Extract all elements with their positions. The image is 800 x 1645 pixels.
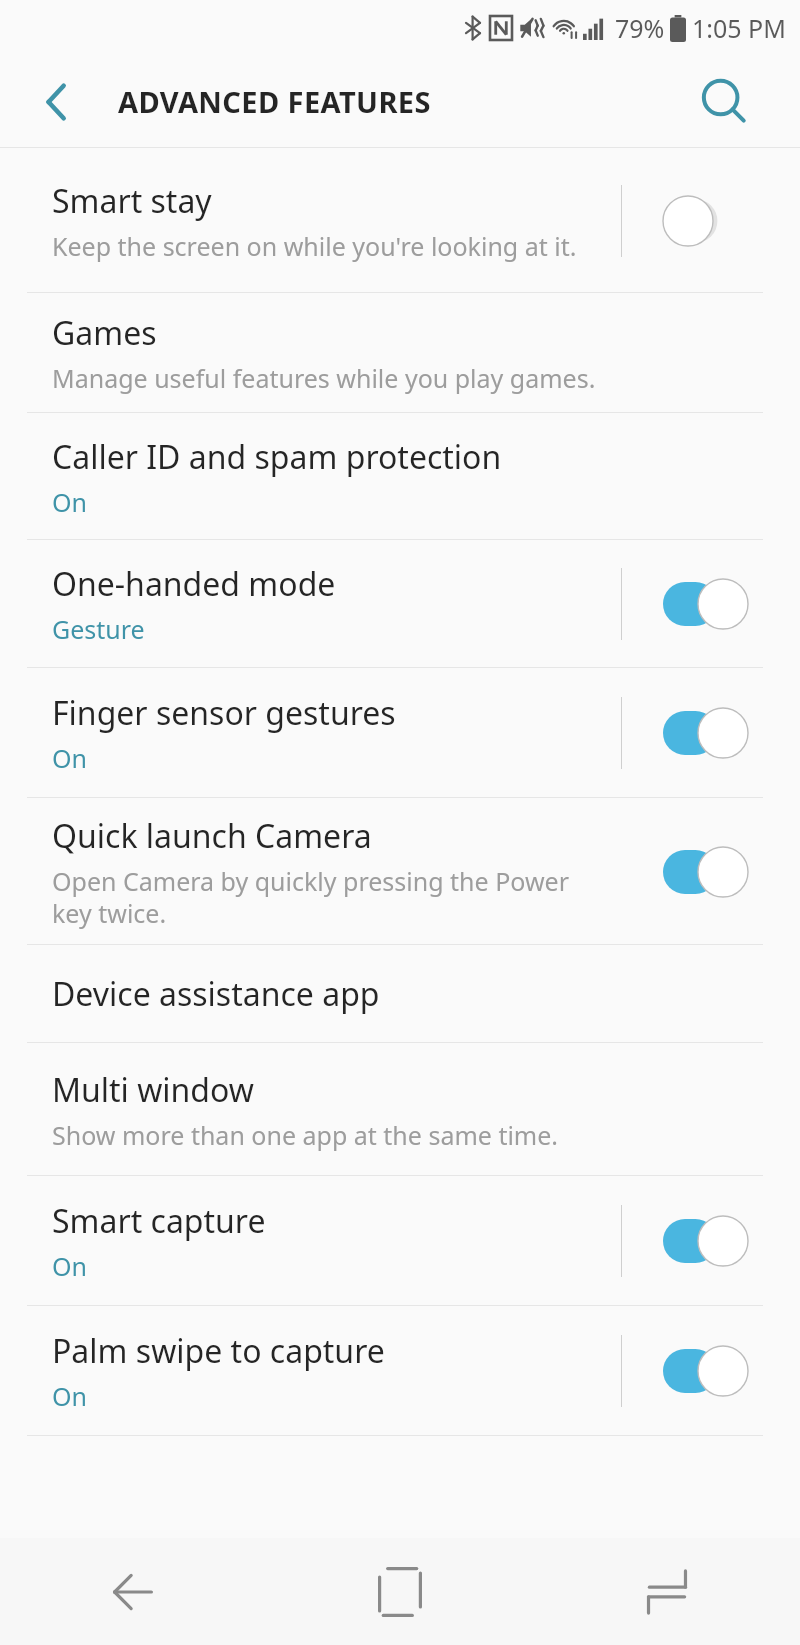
staticText: Show more than one app at the same time. [52,1118,559,1152]
button[interactable]: Finger sensor gestures toggle [605,668,800,798]
staticText: On [52,1379,87,1413]
button[interactable]: Smart capture [0,1176,800,1306]
staticText: Keep the screen on while you're looking … [52,229,577,263]
staticText: Games [52,311,157,355]
button[interactable]: Back [0,1538,266,1645]
staticText: On [52,485,87,519]
staticText: Manage useful features while you play ga… [52,361,596,395]
staticText: Open Camera by quickly pressing the Powe… [52,864,597,930]
button[interactable]: Games [0,293,800,413]
button[interactable]: Caller ID and spam protection [0,413,800,540]
staticText: On [52,741,87,775]
button[interactable]: Multi window [0,1043,800,1176]
button[interactable]: Palm swipe to capture toggle [605,1306,800,1436]
staticText: ADVANCED FEATURES [118,82,431,121]
button[interactable]: Recent apps [533,1538,800,1645]
staticText: Finger sensor gestures [52,691,396,735]
staticText: Device assistance app [52,972,380,1016]
button[interactable]: Back [30,73,88,131]
staticText: Smart capture [52,1199,266,1243]
button[interactable]: Palm swipe to capture [0,1306,800,1436]
staticText: Multi window [52,1068,254,1112]
button[interactable]: Search [696,74,752,130]
button[interactable]: Quick launch Camera toggle [605,798,800,945]
staticText: On [52,1249,87,1283]
button[interactable]: One-handed mode [0,540,800,668]
button[interactable]: Smart stay [0,148,800,293]
staticText: One-handed mode [52,562,336,606]
staticText: 79% [615,11,665,45]
button[interactable]: Home [266,1538,533,1645]
staticText: Gesture [52,612,145,646]
staticText: Palm swipe to capture [52,1329,385,1373]
staticText: Caller ID and spam protection [52,435,502,479]
staticText: Smart stay [52,179,212,223]
button[interactable]: Quick launch Camera [0,798,800,945]
button[interactable]: Finger sensor gestures [0,668,800,798]
button[interactable]: Smart capture toggle [605,1176,800,1306]
button[interactable]: One-handed mode toggle [605,540,800,668]
staticText: 1:05 PM [692,11,786,45]
button[interactable]: Smart stay toggle [605,148,800,293]
button[interactable]: Device assistance app [0,945,800,1043]
staticText: Quick launch Camera [52,814,372,858]
